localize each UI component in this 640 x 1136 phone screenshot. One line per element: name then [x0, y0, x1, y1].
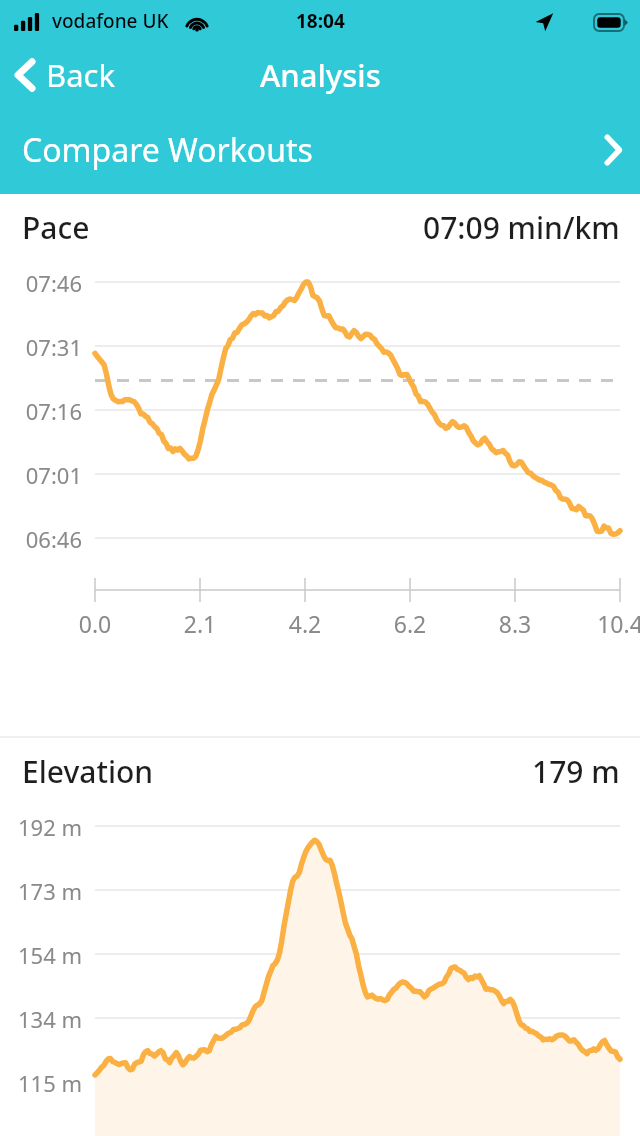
staticText: Pace	[22, 207, 90, 248]
staticText: 115 m	[0, 1068, 82, 1098]
staticText: 179 m	[532, 751, 620, 792]
staticText: Compare Workouts	[22, 128, 313, 172]
button[interactable]: Compare Workouts	[0, 106, 640, 194]
staticText: 07:31	[0, 332, 82, 362]
staticText: Elevation	[22, 751, 154, 792]
staticText: 18:04	[296, 8, 345, 34]
staticText: 07:16	[0, 396, 82, 426]
staticText: 07:01	[0, 460, 82, 490]
staticText: 8.3	[481, 608, 549, 639]
staticText: Back	[46, 54, 115, 96]
staticText: 6.2	[376, 608, 444, 639]
staticText: 10.4	[586, 608, 640, 639]
staticText: 154 m	[0, 940, 82, 970]
staticText: 07:46	[0, 268, 82, 298]
staticText: 07:09 min/km	[423, 207, 620, 248]
staticText: 134 m	[0, 1004, 82, 1034]
staticText: 173 m	[0, 876, 82, 906]
staticText: Analysis	[260, 54, 381, 96]
staticText: 4.2	[271, 608, 339, 639]
staticText: vodafone UK	[52, 8, 169, 34]
staticText: 0.0	[61, 608, 129, 639]
staticText: 192 m	[0, 812, 82, 842]
staticText: 06:46	[0, 524, 82, 554]
staticText: 2.1	[166, 608, 234, 639]
button[interactable]: Back	[0, 48, 131, 102]
